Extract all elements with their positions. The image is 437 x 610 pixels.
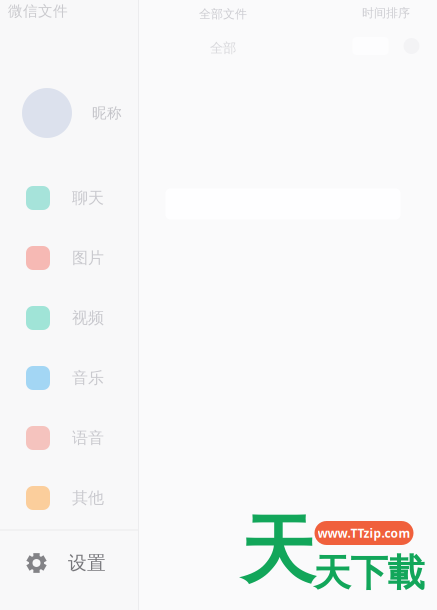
staticText: 图片	[72, 248, 104, 268]
button[interactable]: 图片	[0, 228, 138, 288]
staticText: 音乐	[72, 368, 104, 388]
button[interactable]: 设置	[0, 524, 138, 602]
staticText: 视频	[72, 308, 104, 328]
staticText: 语音	[72, 428, 104, 448]
staticText: 聊天	[72, 188, 104, 208]
button[interactable]: 全部文件	[177, 6, 269, 56]
staticText: 时间排序	[362, 6, 410, 20]
staticText: 天下載	[313, 550, 424, 596]
button[interactable]: 视频	[0, 288, 138, 348]
staticText: 天	[240, 505, 315, 597]
staticText: 昵称	[92, 104, 122, 122]
button[interactable]: 语音	[0, 408, 138, 468]
button[interactable]: 昵称	[0, 84, 138, 142]
staticText: 全部文件	[199, 7, 247, 21]
staticText: www.TTzip.com	[317, 525, 410, 541]
staticText: 设置	[68, 551, 106, 574]
button[interactable]: 聊天	[0, 168, 138, 228]
button[interactable]: 时间排序	[351, 5, 421, 55]
button[interactable]: 其他	[0, 468, 138, 528]
staticText: 微信文件	[8, 2, 68, 20]
button[interactable]: 音乐	[0, 348, 138, 408]
staticText: 其他	[72, 488, 104, 508]
staticText: 全部	[210, 40, 236, 56]
